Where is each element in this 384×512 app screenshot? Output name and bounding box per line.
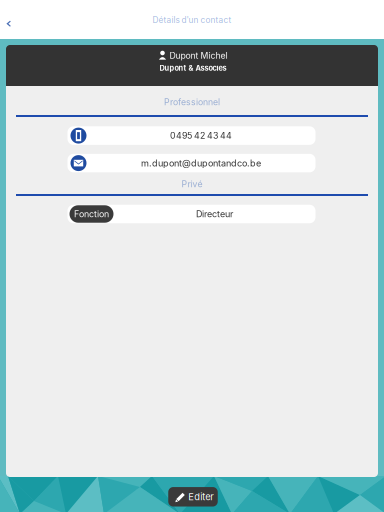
staticText: Dupont Michel	[169, 50, 227, 61]
button[interactable]: Back	[0, 10, 20, 38]
button[interactable]: Editer	[168, 487, 218, 507]
staticText: Fonction	[74, 209, 109, 219]
button[interactable]: 0495 42 43 44	[67, 126, 315, 145]
staticText: 0495 42 43 44	[170, 130, 232, 141]
staticText: Editer	[188, 491, 214, 502]
staticText: Détails d'un contact	[152, 15, 231, 25]
staticText: Dupont & Associés	[159, 64, 226, 72]
staticText: Directeur	[196, 209, 233, 219]
staticText: Professionnel	[164, 97, 220, 107]
button[interactable]: Fonction	[67, 205, 315, 223]
button[interactable]: m.dupont@dupontandco.be	[67, 154, 315, 172]
staticText: m.dupont@dupontandco.be	[141, 158, 261, 169]
staticText: Privé	[181, 179, 202, 189]
